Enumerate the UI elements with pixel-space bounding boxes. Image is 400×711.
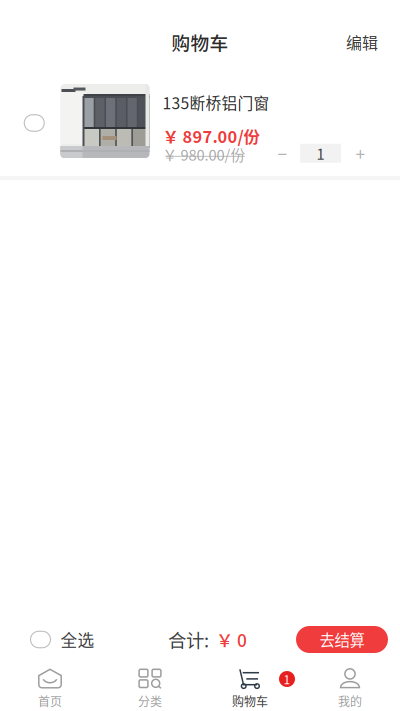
staticText: 分类 [138,692,162,710]
staticText: 合计: [168,626,209,653]
staticText: 135断桥铝门窗 [162,91,269,114]
staticText: 购物车 [171,28,228,55]
staticText: 我的 [338,692,362,710]
staticText: ￥ 980.00/份 [162,144,245,165]
button[interactable]: 我的 [300,662,400,711]
button[interactable]: 全选 [0,617,106,662]
staticText: ￥ 897.00/份 [162,124,259,148]
staticText: 全选 [60,627,94,651]
staticText: 去结算 [319,628,364,651]
staticText: − [277,141,287,166]
button[interactable]: 购物车 [200,662,300,711]
staticText: 首页 [38,692,62,710]
staticText: 编辑 [346,30,378,54]
button[interactable]: Increase quantity [352,144,369,163]
staticText: 1 [316,143,324,164]
staticText: 1 [283,670,290,688]
staticText: 购物车 [232,692,268,710]
staticText: ￥ 0 [216,627,247,652]
button[interactable]: 分类 [100,662,200,711]
button[interactable]: 首页 [0,662,100,711]
button[interactable]: 去结算 [296,626,388,653]
button[interactable]: Select item [0,68,60,176]
button[interactable]: Decrease quantity [274,144,291,163]
staticText: + [355,141,365,166]
button[interactable]: 编辑 [328,21,400,63]
